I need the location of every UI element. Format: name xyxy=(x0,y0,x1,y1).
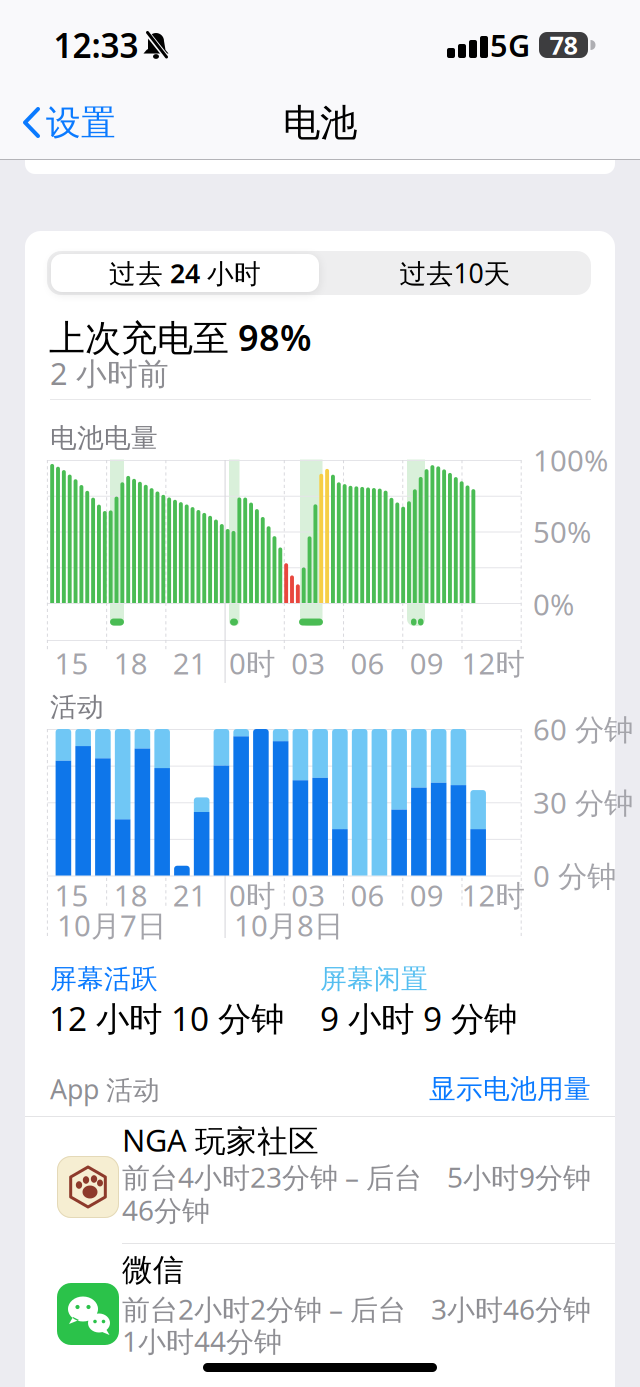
staticText: 5G xyxy=(490,25,530,65)
staticText: 12:33 xyxy=(53,23,138,67)
staticText: 屏幕闲置 xyxy=(320,963,428,995)
staticText: 18 xyxy=(114,875,148,914)
staticText: 60 分钟 xyxy=(533,709,633,748)
staticText: 过去 24 小时 xyxy=(109,255,261,291)
staticText: 10月7日 xyxy=(57,905,166,944)
staticText: 微信 xyxy=(122,1251,184,1289)
staticText: 03 xyxy=(291,875,325,914)
staticText: 10月8日 xyxy=(234,905,343,944)
staticText: 上次充电至 98% xyxy=(49,313,312,361)
staticText: 0 分钟 xyxy=(533,856,616,895)
staticText: 15 xyxy=(54,643,88,682)
staticText: 06 xyxy=(350,875,384,914)
staticText: 03 xyxy=(291,643,325,682)
staticText: 电池电量 xyxy=(50,422,158,454)
staticText: 9 小时 9 分钟 xyxy=(320,996,517,1040)
button[interactable]: 微信 xyxy=(25,1244,615,1374)
staticText: 0% xyxy=(533,584,574,623)
staticText: 21 xyxy=(173,643,207,682)
button[interactable]: 过去 24 小时 xyxy=(51,254,319,292)
staticText: 显示电池用量 xyxy=(429,1073,591,1105)
staticText: 2 小时前 xyxy=(50,353,169,393)
staticText: 屏幕活跃 xyxy=(50,963,158,995)
staticText: 18 xyxy=(114,643,148,682)
button[interactable]: 过去10天 xyxy=(321,254,589,292)
staticText: NGA 玩家社区 xyxy=(122,1120,319,1160)
staticText: 前台4小时23分钟 – 后台 xyxy=(122,1158,422,1196)
staticText: 09 xyxy=(410,643,444,682)
button[interactable]: NGA 玩家社区 xyxy=(25,1116,615,1242)
staticText: 30 分钟 xyxy=(533,783,633,822)
staticText: 前台2小时2分钟 – 后台 xyxy=(122,1290,406,1328)
staticText: 15 xyxy=(54,875,88,914)
staticText: 5小时9分钟 xyxy=(447,1158,591,1196)
button[interactable]: 设置 xyxy=(10,101,120,145)
staticText: 09 xyxy=(410,875,444,914)
staticText: 设置 xyxy=(46,102,116,144)
staticText: 1小时44分钟 xyxy=(122,1322,282,1360)
staticText: 电池 xyxy=(283,100,357,146)
staticText: App 活动 xyxy=(50,1071,160,1107)
staticText: 3小时46分钟 xyxy=(431,1290,591,1328)
staticText: 78 xyxy=(549,28,577,62)
staticText: 12 小时 10 分钟 xyxy=(49,996,284,1040)
staticText: 21 xyxy=(173,875,207,914)
staticText: 过去10天 xyxy=(399,255,510,291)
staticText: 活动 xyxy=(50,691,104,723)
staticText: 12时 xyxy=(461,875,524,914)
staticText: 50% xyxy=(533,512,591,551)
staticText: 100% xyxy=(533,440,608,479)
staticText: 06 xyxy=(350,643,384,682)
staticText: 0时 xyxy=(229,875,275,914)
staticText: 0时 xyxy=(229,643,275,682)
button[interactable]: 显示电池用量 xyxy=(371,1073,591,1105)
staticText: 12时 xyxy=(461,643,524,682)
staticText: 46分钟 xyxy=(122,1191,210,1229)
